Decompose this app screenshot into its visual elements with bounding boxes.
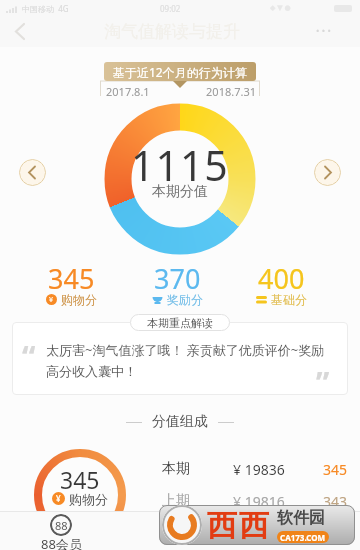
staticText: 345 bbox=[48, 260, 95, 292]
staticText: ” bbox=[316, 362, 330, 403]
staticText: 分值组成 bbox=[152, 413, 208, 431]
staticText: 88 bbox=[55, 518, 68, 533]
staticText: 购物分 bbox=[69, 491, 108, 506]
button[interactable] bbox=[12, 322, 348, 395]
staticText: ¥ bbox=[56, 493, 61, 504]
staticText: 1115 bbox=[131, 137, 229, 193]
button[interactable] bbox=[19, 159, 46, 186]
staticText: 太厉害~淘气值涨了哦！ 亲贡献了优质评价~奖励 高分收入囊中！ bbox=[46, 341, 326, 380]
staticText: 400 bbox=[258, 260, 305, 292]
staticText: 本期分值 bbox=[152, 183, 208, 201]
staticText: 345 bbox=[323, 460, 348, 479]
staticText: 2017.8.1 bbox=[106, 84, 150, 99]
staticText: 西西 bbox=[206, 507, 270, 545]
staticText: 中国移动 4G bbox=[22, 3, 69, 14]
button[interactable]: 基于近12个月的行为计算 bbox=[104, 62, 256, 81]
staticText: 09:02 bbox=[160, 3, 181, 14]
staticText: 本期重点解读 bbox=[147, 316, 213, 330]
staticText: 本期 bbox=[162, 460, 190, 478]
staticText: 88会员 bbox=[41, 535, 82, 550]
staticText: 基础分 bbox=[271, 292, 307, 306]
staticText: “ bbox=[22, 336, 36, 377]
staticText: ¥ bbox=[49, 295, 54, 305]
button[interactable] bbox=[314, 159, 341, 186]
button[interactable]: 345 bbox=[21, 260, 121, 306]
button[interactable]: 400 bbox=[231, 260, 331, 306]
button[interactable]: 88 bbox=[50, 514, 72, 536]
staticText: CA173.COM bbox=[280, 532, 326, 543]
staticText: 基于近12个月的行为计算 bbox=[113, 64, 247, 80]
staticText: ¥ 19816 bbox=[233, 492, 285, 511]
staticText: 淘气值 bbox=[162, 528, 204, 546]
button[interactable]: 370 bbox=[127, 260, 227, 306]
staticText: 2018.7.31 bbox=[196, 84, 256, 99]
staticText: 370 bbox=[154, 260, 201, 292]
button[interactable] bbox=[0, 16, 40, 47]
staticText: 淘气值解读与提升 bbox=[104, 21, 240, 42]
staticText: 购物分 bbox=[61, 292, 97, 306]
staticText: ¥ 19836 bbox=[233, 460, 285, 479]
staticText: ◆ ▼ ● bbox=[270, 3, 291, 13]
staticText: 奖励分 bbox=[167, 292, 203, 306]
staticText: • • • bbox=[316, 24, 331, 36]
staticText: 上期 bbox=[162, 492, 190, 510]
staticText: 软件园 bbox=[277, 508, 325, 528]
staticText: 345 bbox=[60, 464, 100, 495]
staticText: 343 bbox=[323, 492, 348, 511]
